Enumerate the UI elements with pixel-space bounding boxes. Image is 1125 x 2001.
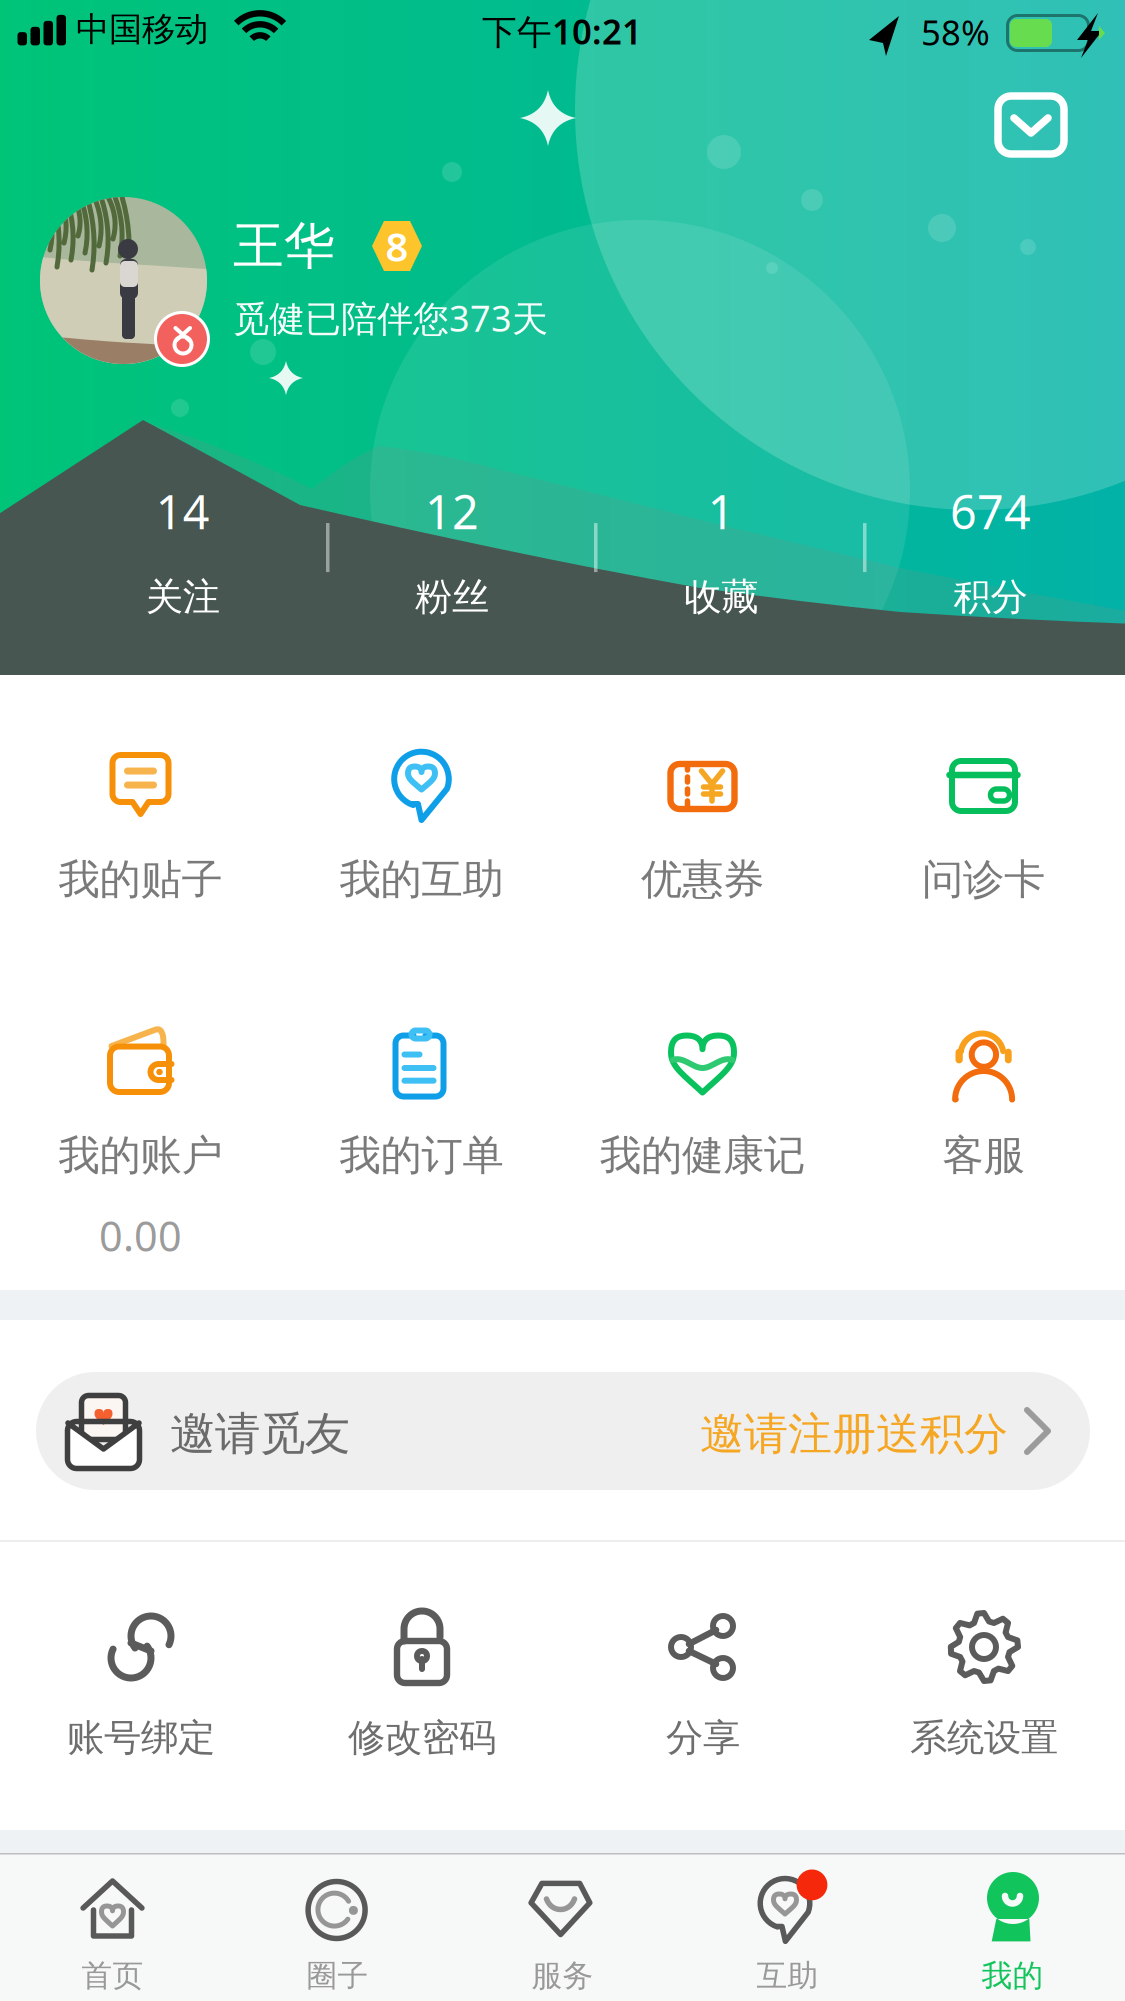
- staticText: 觅健已陪伴您373天: [233, 294, 548, 342]
- button[interactable]: 我的贴子: [0, 738, 281, 938]
- staticText: 1: [708, 480, 735, 542]
- staticText: 我的订单: [339, 1130, 503, 1181]
- staticText: 12: [425, 480, 479, 542]
- button[interactable]: 首页: [0, 1875, 225, 2001]
- button[interactable]: 邀请觅友: [36, 1372, 1090, 1490]
- staticText: 下午10:21: [482, 8, 642, 54]
- staticText: 0.00: [99, 1208, 182, 1263]
- button[interactable]: 修改密码: [281, 1599, 562, 1799]
- button[interactable]: 账号绑定: [0, 1599, 281, 1799]
- button[interactable]: 系统设置: [843, 1599, 1124, 1799]
- staticText: 关注: [146, 574, 220, 620]
- button[interactable]: 我的订单: [281, 1014, 562, 1214]
- button[interactable]: 12: [317, 480, 586, 620]
- button[interactable]: 我的账户: [0, 1014, 281, 1214]
- staticText: 修改密码: [348, 1715, 496, 1761]
- staticText: 服务: [531, 1957, 593, 1995]
- staticText: 我的健康记: [600, 1130, 805, 1181]
- button[interactable]: 问诊卡: [843, 738, 1124, 938]
- button[interactable]: 14: [48, 480, 317, 620]
- staticText: 系统设置: [910, 1715, 1058, 1761]
- staticText: 王华: [233, 215, 335, 277]
- staticText: 邀请觅友: [170, 1406, 350, 1462]
- staticText: 收藏: [684, 574, 758, 620]
- staticText: 客服: [942, 1130, 1024, 1181]
- button[interactable]: Messages: [976, 74, 1086, 176]
- button[interactable]: 1: [586, 480, 856, 620]
- button[interactable]: 我的互助: [281, 738, 562, 938]
- staticText: 积分: [953, 574, 1027, 620]
- staticText: 账号绑定: [67, 1715, 215, 1761]
- staticText: 分享: [666, 1715, 740, 1761]
- staticText: 8: [385, 219, 408, 272]
- staticText: 优惠券: [641, 854, 764, 905]
- staticText: 58%: [921, 9, 990, 55]
- staticText: 圈子: [306, 1957, 368, 1995]
- staticText: 我的互助: [339, 854, 503, 905]
- button[interactable]: 分享: [562, 1599, 843, 1799]
- staticText: 问诊卡: [922, 854, 1045, 905]
- staticText: 14: [156, 480, 210, 542]
- button[interactable]: 优惠券: [562, 738, 843, 938]
- staticText: 互助: [756, 1957, 818, 1995]
- staticText: 674: [950, 480, 1031, 542]
- button[interactable]: 服务: [450, 1875, 675, 2001]
- staticText: 粉丝: [415, 574, 489, 620]
- button[interactable]: 圈子: [225, 1875, 450, 2001]
- button[interactable]: 互助: [675, 1875, 900, 2001]
- button[interactable]: 我的: [900, 1875, 1125, 2001]
- button[interactable]: 我的健康记: [562, 1014, 843, 1214]
- staticText: 我的贴子: [58, 854, 222, 905]
- staticText: 我的账户: [58, 1130, 222, 1181]
- staticText: 我的: [981, 1957, 1043, 1995]
- staticText: 首页: [81, 1957, 143, 1995]
- button[interactable]: 客服: [843, 1014, 1124, 1214]
- staticText: 中国移动: [76, 9, 208, 50]
- button[interactable]: 674: [856, 480, 1125, 620]
- staticText: 邀请注册送积分: [700, 1407, 1008, 1461]
